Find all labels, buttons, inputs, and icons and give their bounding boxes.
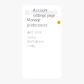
button[interactable]: Account settings page	[30, 10, 57, 15]
staticText: Saved items	[26, 31, 41, 34]
staticText: Notifications	[26, 40, 43, 43]
button[interactable]: Notifications	[26, 40, 61, 43]
staticText: Profile	[26, 36, 36, 39]
staticText: Privacy	[26, 44, 34, 47]
staticText: Account settings page	[33, 7, 55, 18]
button[interactable]: Profile	[26, 36, 61, 39]
button[interactable]: Privacy	[26, 44, 61, 47]
staticText: Manage preferences	[26, 17, 47, 28]
